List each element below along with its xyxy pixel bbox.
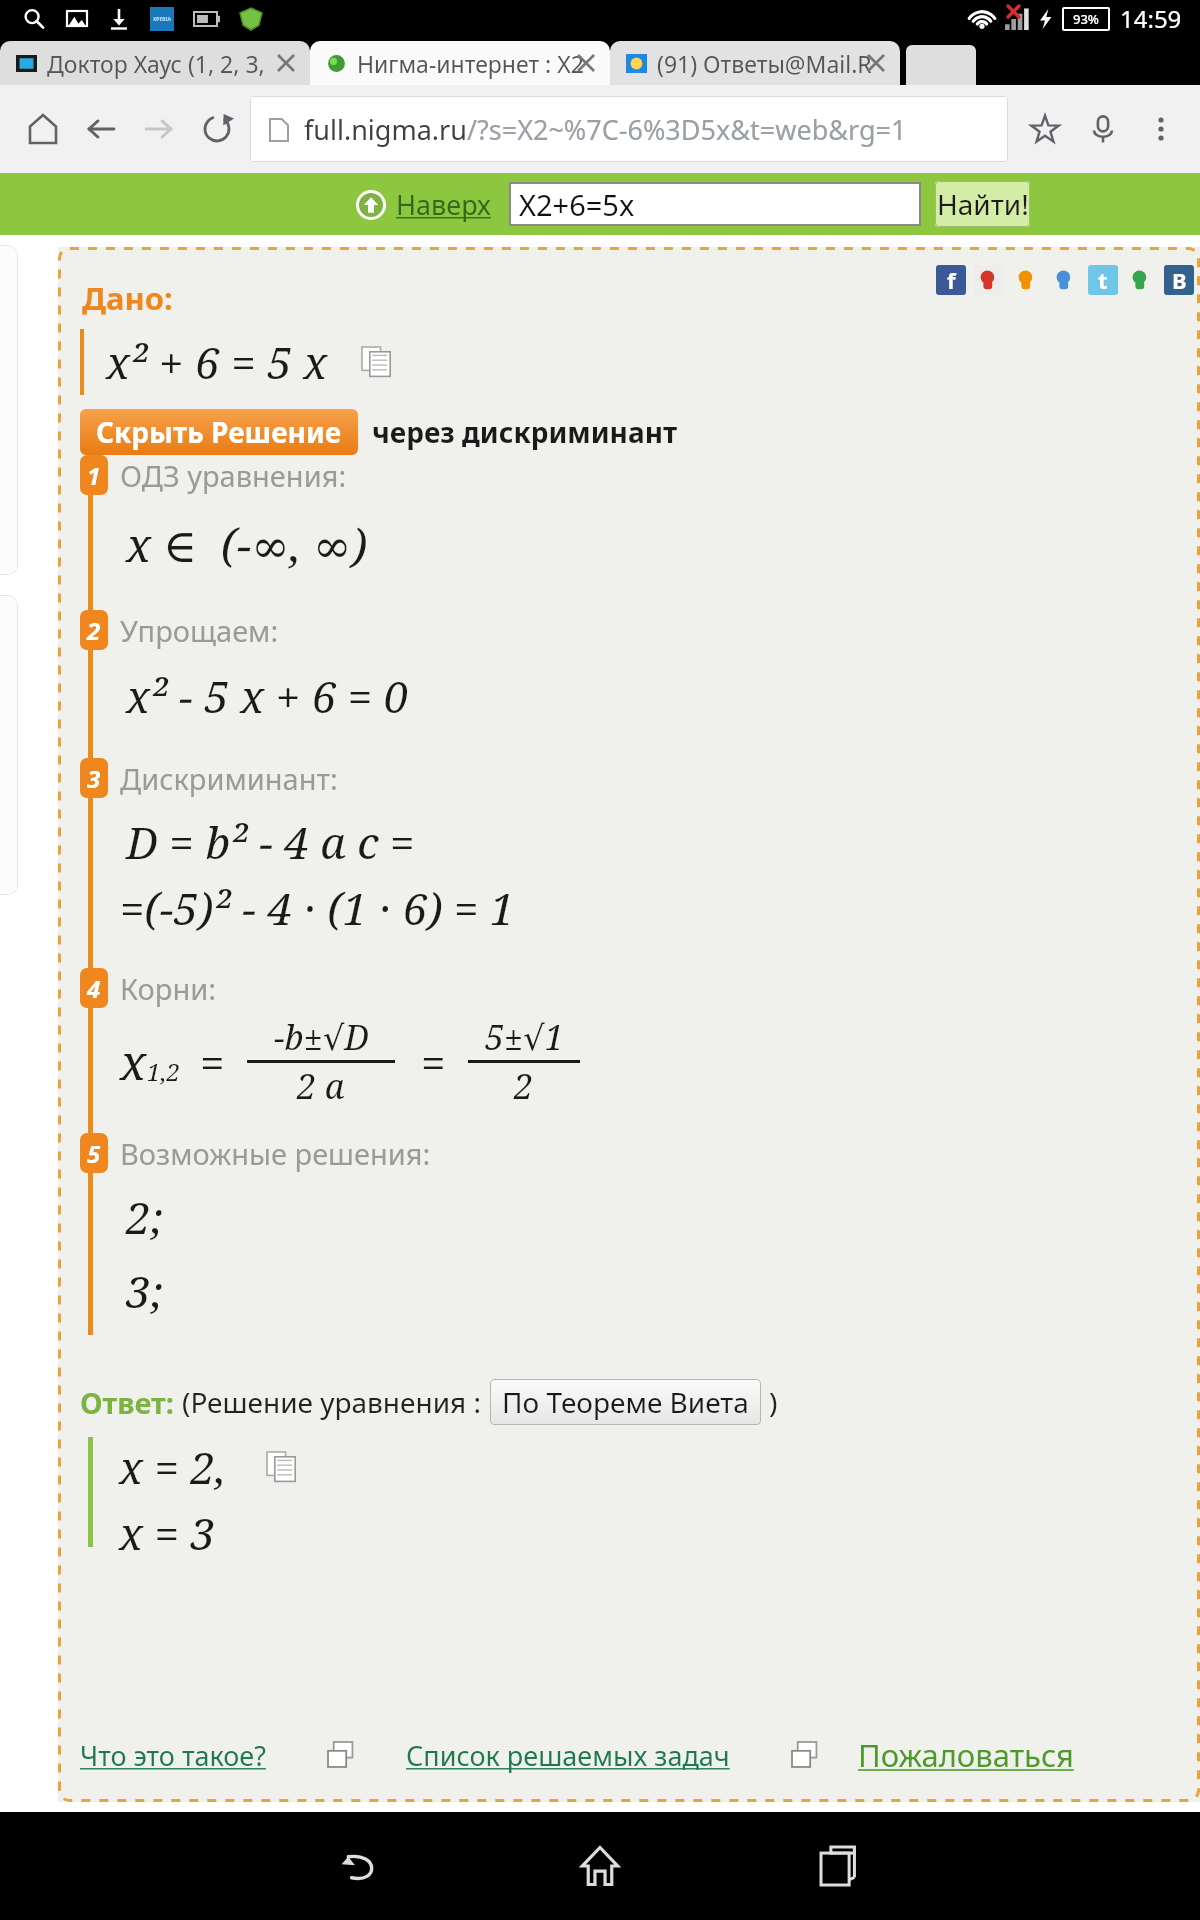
staticText: 4 bbox=[87, 972, 101, 1005]
button[interactable]: Forward bbox=[130, 100, 188, 158]
staticText: 93% bbox=[1073, 10, 1099, 28]
staticText: 2 bbox=[514, 1063, 534, 1109]
staticText: Дискриминант: bbox=[120, 759, 338, 798]
staticText: через дискриминант bbox=[372, 413, 678, 451]
button[interactable]: full.nigma.ru bbox=[250, 96, 1008, 162]
staticText: 2; bbox=[126, 1187, 164, 1247]
button[interactable]: Close tab bbox=[576, 53, 596, 73]
button[interactable]: (91) Ответы@Mail.R bbox=[610, 41, 900, 85]
button[interactable]: Пожаловаться bbox=[858, 1734, 1074, 1776]
staticText: 2 bbox=[87, 614, 101, 647]
button[interactable]: Нигма-интернет : X2 bbox=[310, 41, 610, 85]
staticText: 3 bbox=[87, 762, 101, 795]
button[interactable]: Close tab bbox=[276, 53, 296, 73]
staticText: 1 bbox=[87, 459, 101, 492]
staticText: ОДЗ уравнения: bbox=[120, 456, 347, 495]
button[interactable]: Список решаемых задач bbox=[406, 1737, 730, 1774]
button[interactable]: More options bbox=[1132, 100, 1190, 158]
staticText: X2+6=5x bbox=[519, 185, 635, 224]
staticText: x bbox=[120, 1029, 147, 1094]
staticText: f bbox=[947, 265, 956, 295]
button[interactable]: Наверх bbox=[356, 186, 491, 223]
button[interactable]: Bookmark bbox=[1016, 100, 1074, 158]
button[interactable]: Twitter bbox=[1088, 265, 1118, 295]
staticText: 3; bbox=[126, 1261, 164, 1321]
staticText: 1,2 bbox=[147, 1055, 180, 1088]
staticText: −b±√D bbox=[274, 1014, 369, 1060]
staticText: Нигма-интернет : X2 bbox=[357, 48, 584, 79]
button[interactable]: VK bbox=[1164, 265, 1194, 295]
staticText: full.nigma.ru bbox=[304, 111, 467, 148]
button[interactable]: Edit bbox=[1050, 265, 1080, 295]
button[interactable]: Copy bbox=[362, 347, 392, 377]
staticText: Найти! bbox=[937, 185, 1029, 223]
staticText: x = 2, bbox=[119, 1437, 227, 1497]
staticText: Корни: bbox=[120, 969, 216, 1008]
staticText: Упрощаем: bbox=[120, 611, 279, 650]
button[interactable]: По Теореме Виета bbox=[490, 1379, 761, 1425]
staticText: = bbox=[200, 1032, 225, 1092]
button[interactable]: Back bbox=[320, 1826, 400, 1906]
staticText: x² − 5 x + 6 = 0 bbox=[126, 666, 409, 726]
button[interactable]: Home bbox=[560, 1826, 640, 1906]
staticText: 1 bbox=[891, 111, 907, 148]
button[interactable]: Скрыть Решение bbox=[80, 409, 358, 455]
button[interactable]: Что это такое? bbox=[80, 1737, 266, 1774]
staticText: x² + 6 = 5 x bbox=[106, 332, 328, 392]
staticText: 5±√1 bbox=[485, 1014, 564, 1060]
staticText: Дано: bbox=[82, 277, 173, 319]
staticText: 5 bbox=[87, 1137, 101, 1170]
staticText: D = b² − 4 a c = bbox=[126, 812, 415, 872]
staticText: ) bbox=[769, 1383, 778, 1421]
staticText: Наверх bbox=[396, 186, 491, 223]
staticText: Скрыть Решение bbox=[96, 413, 342, 451]
staticText: /?s=X2~%7C-6%3D5x&t=web&rg= bbox=[467, 111, 891, 148]
button[interactable] bbox=[906, 45, 976, 85]
button[interactable]: Open window bbox=[792, 1742, 818, 1768]
staticText: Ответ: bbox=[80, 1383, 174, 1422]
staticText: (Решение уравнения : bbox=[182, 1383, 482, 1421]
button[interactable]: Share 3 bbox=[1126, 265, 1156, 295]
staticText: По Теореме Виета bbox=[502, 1383, 749, 1421]
staticText: t bbox=[1098, 265, 1108, 295]
staticText: XPERIA bbox=[153, 16, 171, 23]
button[interactable]: Open window bbox=[328, 1742, 354, 1768]
button[interactable]: Share 2 bbox=[1012, 265, 1042, 295]
staticText: x = 3 bbox=[119, 1503, 216, 1563]
button[interactable]: Recent apps bbox=[800, 1826, 880, 1906]
staticText: 14:59 bbox=[1120, 2, 1182, 35]
button[interactable]: Найти! bbox=[935, 181, 1030, 227]
button[interactable]: Reload bbox=[188, 100, 246, 158]
button[interactable]: Facebook bbox=[936, 265, 966, 295]
button[interactable]: Доктор Хаус (1, 2, 3, bbox=[0, 41, 310, 85]
button[interactable]: X2+6=5x bbox=[509, 182, 921, 226]
button[interactable]: Back bbox=[72, 100, 130, 158]
staticText: 2 a bbox=[297, 1063, 345, 1109]
staticText: B bbox=[1172, 265, 1187, 295]
staticText: (91) Ответы@Mail.R bbox=[657, 48, 872, 79]
staticText: =(−5)² − 4 · (1 · 6) = 1 bbox=[120, 878, 515, 938]
button[interactable]: Copy bbox=[267, 1452, 297, 1482]
button[interactable]: Home bbox=[14, 100, 72, 158]
staticText: x ∈ (−∞, ∞) bbox=[126, 513, 368, 576]
staticText: Доктор Хаус (1, 2, 3, bbox=[47, 48, 265, 79]
button[interactable]: Share 1 bbox=[974, 265, 1004, 295]
button[interactable]: Voice search bbox=[1074, 100, 1132, 158]
button[interactable]: Close tab bbox=[866, 53, 886, 73]
staticText: = bbox=[421, 1032, 446, 1092]
staticText: Возможные решения: bbox=[120, 1134, 431, 1173]
